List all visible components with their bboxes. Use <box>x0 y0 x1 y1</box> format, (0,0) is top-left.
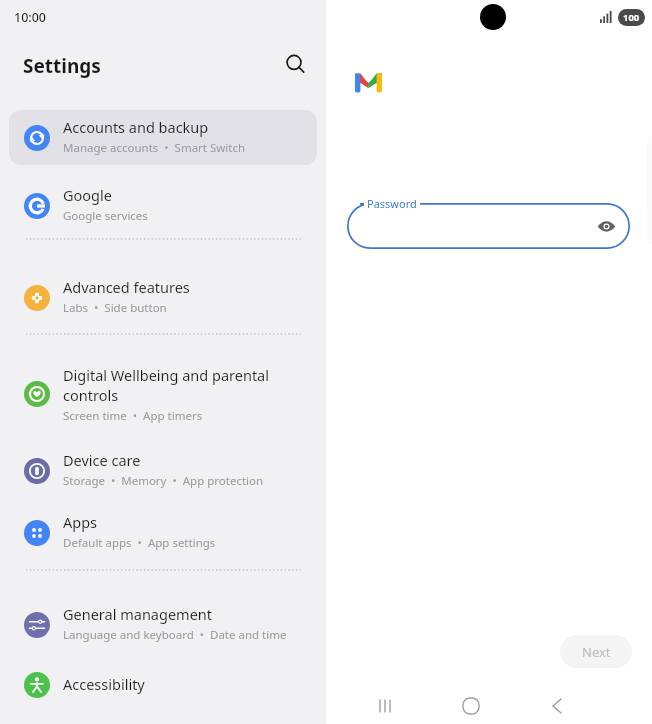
button[interactable]: Accounts and backup <box>9 111 317 164</box>
staticText: Device care <box>63 450 141 470</box>
staticText: Google services <box>63 208 148 224</box>
staticText: Next <box>582 643 611 661</box>
staticText: Language and keyboard • Date and time <box>63 627 287 643</box>
button[interactable]: Google <box>9 179 317 232</box>
staticText: 10:00 <box>14 9 47 26</box>
staticText: Default apps • App settings <box>63 535 216 551</box>
staticText: Labs • Side button <box>63 300 167 316</box>
button[interactable]: Accessibility <box>9 659 317 712</box>
staticText: Storage • Memory • App protection <box>63 473 264 489</box>
button[interactable]: Home <box>451 686 491 724</box>
staticText: Google <box>63 185 112 205</box>
button[interactable]: Digital Wellbeing and parental <box>9 363 317 427</box>
staticText: Screen time • App timers <box>63 408 203 424</box>
staticText: Accessibility <box>63 674 145 694</box>
button[interactable]: Apps <box>9 506 317 559</box>
button[interactable]: Device care <box>9 444 317 497</box>
button[interactable]: General management <box>9 598 317 651</box>
staticText: controls <box>63 385 119 405</box>
staticText: Accounts and backup <box>63 117 209 137</box>
button[interactable]: Recent apps <box>365 686 405 724</box>
staticText: Settings <box>23 53 101 79</box>
button[interactable]: Next <box>560 635 632 668</box>
staticText: Manage accounts • Smart Switch <box>63 140 246 156</box>
button[interactable]: Back <box>537 686 577 724</box>
staticText: Advanced features <box>63 277 190 297</box>
button[interactable]: Advanced features <box>9 271 317 324</box>
staticText: Digital Wellbeing and parental <box>63 365 269 385</box>
staticText: Password <box>367 196 417 211</box>
button[interactable]: Password <box>347 203 630 249</box>
staticText: General management <box>63 604 213 624</box>
staticText: 100 <box>623 11 640 24</box>
button[interactable]: Show password <box>591 211 621 241</box>
staticText: Apps <box>63 512 98 532</box>
button[interactable]: Search settings <box>275 44 315 84</box>
button[interactable] <box>9 110 317 165</box>
